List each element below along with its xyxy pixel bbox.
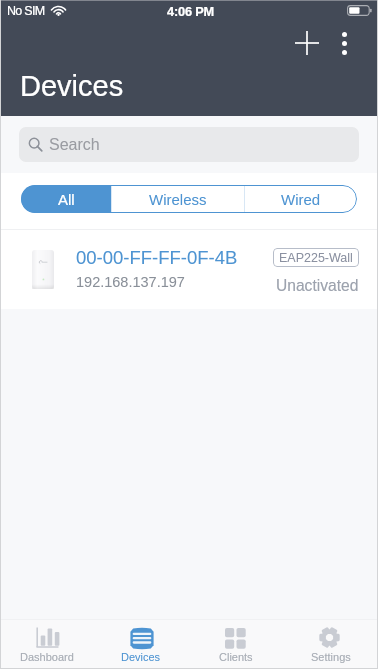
staticText: 4:06 PM [167, 4, 214, 18]
button[interactable]: Devices [94, 620, 188, 669]
button[interactable]: All [21, 185, 111, 213]
button[interactable]: Dashboard [0, 620, 94, 669]
button[interactable]: Settings [283, 620, 378, 669]
staticText: All [58, 191, 75, 208]
staticText: EAP225-Wall [279, 251, 353, 265]
staticText: 00-00-FF-FF-0F-4B [76, 247, 238, 268]
staticText: Search [49, 136, 100, 154]
button[interactable]: Add device [285, 21, 329, 65]
staticText: Clients [219, 651, 253, 663]
button[interactable]: Search [19, 127, 359, 162]
button[interactable]: Wired [245, 185, 357, 213]
staticText: Unactivated [276, 277, 359, 294]
staticText: No SIM [7, 4, 45, 18]
staticText: Devices [20, 70, 124, 102]
staticText: Wired [281, 191, 321, 208]
staticText: Devices [121, 651, 161, 663]
staticText: 192.168.137.197 [76, 274, 185, 290]
button[interactable]: More options [322, 21, 366, 65]
staticText: Wireless [149, 191, 207, 208]
button[interactable]: Clients [188, 620, 283, 669]
button[interactable]: Wireless [112, 185, 244, 213]
button[interactable]: 00-00-FF-FF-0F-4B [0, 230, 378, 309]
staticText: Dashboard [20, 651, 74, 663]
staticText: Settings [311, 651, 351, 663]
